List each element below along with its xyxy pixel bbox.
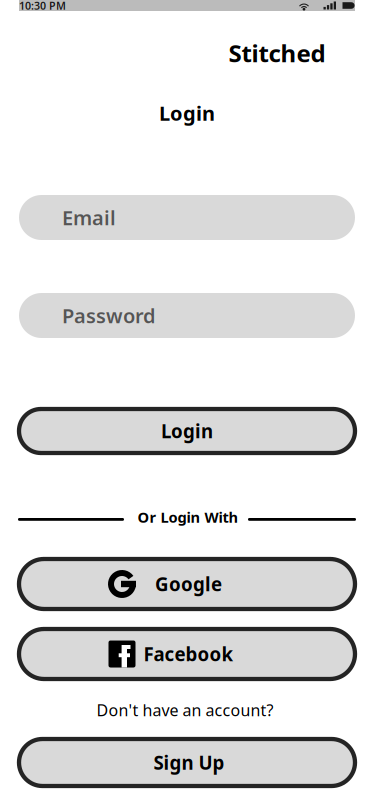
staticText: 10:30 PM <box>19 0 66 13</box>
staticText: Don't have an account? <box>96 699 273 721</box>
button[interactable]: Sign Up <box>19 739 355 786</box>
staticText: Password <box>62 302 156 329</box>
button[interactable]: Password <box>19 293 355 338</box>
staticText: Login <box>159 100 215 126</box>
button[interactable]: Facebook <box>19 629 355 679</box>
staticText: Login <box>161 419 213 443</box>
staticText: Stitched <box>228 37 325 69</box>
staticText: Sign Up <box>153 750 224 775</box>
staticText: Email <box>62 204 116 231</box>
button[interactable]: Login <box>19 409 355 453</box>
button[interactable]: Google <box>19 559 355 609</box>
button[interactable]: Email <box>19 195 355 240</box>
staticText: Or Login With <box>137 507 238 527</box>
staticText: Google <box>155 572 222 596</box>
staticText: Facebook <box>143 642 233 666</box>
